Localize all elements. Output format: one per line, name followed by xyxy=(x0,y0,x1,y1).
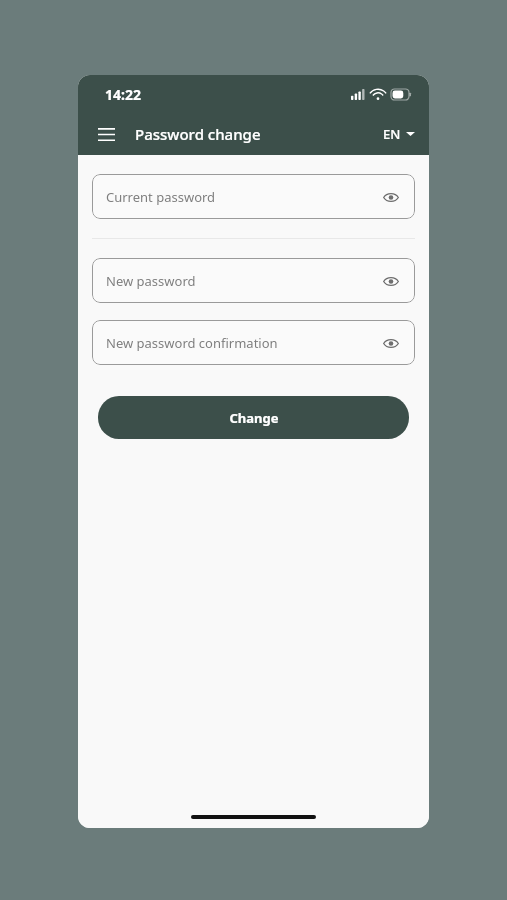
button[interactable]: New password confirmation xyxy=(92,320,415,365)
button[interactable]: Current password xyxy=(92,174,415,219)
staticText: EN xyxy=(383,125,401,143)
button[interactable]: Change xyxy=(98,396,409,439)
staticText: Password change xyxy=(135,124,261,144)
button[interactable]: Show password xyxy=(377,329,405,357)
button[interactable]: Show password xyxy=(377,183,405,211)
staticText: New password confirmation xyxy=(106,334,278,352)
staticText: New password xyxy=(106,272,196,290)
button[interactable]: Open navigation menu xyxy=(88,116,124,152)
button[interactable]: Show password xyxy=(377,267,405,295)
button[interactable]: EN xyxy=(383,125,415,143)
staticText: Current password xyxy=(106,188,216,206)
button[interactable]: New password xyxy=(92,258,415,303)
staticText: 14:22 xyxy=(105,85,141,104)
staticText: Change xyxy=(229,409,279,427)
